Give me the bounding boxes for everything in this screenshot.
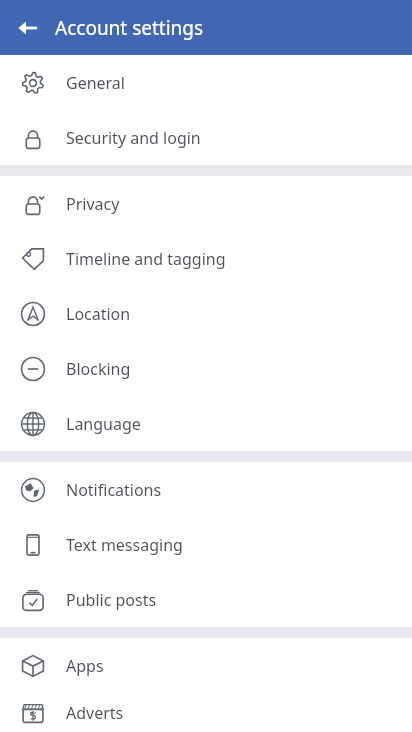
staticText: Location xyxy=(66,303,131,325)
button[interactable]: Notifications xyxy=(0,462,412,517)
button[interactable]: Text messaging xyxy=(0,517,412,572)
staticText: Public posts xyxy=(66,589,157,611)
staticText: General xyxy=(66,72,125,94)
button[interactable]: Apps xyxy=(0,638,412,693)
staticText: Blocking xyxy=(66,358,131,380)
button[interactable]: Public posts xyxy=(0,572,412,627)
staticText: Timeline and tagging xyxy=(66,248,226,270)
button[interactable]: Location xyxy=(0,286,412,341)
staticText: Account settings xyxy=(55,15,204,41)
button[interactable]: Adverts xyxy=(0,693,412,732)
button[interactable]: Back xyxy=(0,0,55,55)
staticText: Security and login xyxy=(66,127,201,149)
button[interactable]: Timeline and tagging xyxy=(0,231,412,286)
button[interactable]: Security and login xyxy=(0,110,412,165)
staticText: Text messaging xyxy=(66,534,183,556)
button[interactable]: Privacy xyxy=(0,176,412,231)
staticText: Notifications xyxy=(66,479,162,501)
button[interactable]: Language xyxy=(0,396,412,451)
staticText: Language xyxy=(66,413,141,435)
staticText: Adverts xyxy=(66,702,124,724)
staticText: Privacy xyxy=(66,193,120,215)
staticText: Apps xyxy=(66,655,104,677)
button[interactable]: Blocking xyxy=(0,341,412,396)
button[interactable]: General xyxy=(0,55,412,110)
